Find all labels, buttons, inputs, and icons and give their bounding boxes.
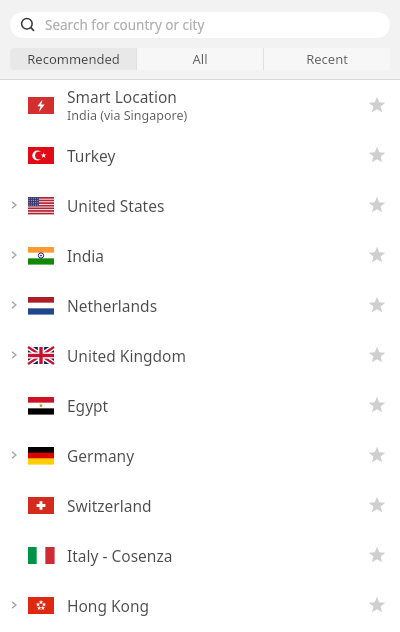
button[interactable]: Favorite Hong Kong [354, 580, 400, 630]
button[interactable]: Favorite Smart Location [354, 80, 400, 130]
staticText: United Kingdom [67, 345, 186, 366]
staticText: Switzerland [67, 495, 152, 516]
button[interactable]: India [0, 230, 400, 280]
staticText: India [67, 245, 105, 266]
staticText: India (via Singapore) [67, 107, 188, 124]
button[interactable]: Favorite India [354, 230, 400, 280]
button[interactable]: Favorite United Kingdom [354, 330, 400, 380]
staticText: Netherlands [67, 295, 158, 316]
button[interactable]: Egypt [0, 380, 400, 430]
button[interactable]: Search for country or city [10, 12, 390, 38]
staticText: Smart Location [67, 86, 177, 107]
button[interactable]: Favorite Netherlands [354, 280, 400, 330]
button[interactable]: All [137, 48, 263, 70]
staticText: Recommended [27, 50, 120, 68]
button[interactable]: Favorite United States [354, 180, 400, 230]
button[interactable]: Hong Kong [0, 580, 400, 630]
button[interactable]: Favorite Germany [354, 430, 400, 480]
staticText: Germany [67, 445, 135, 466]
button[interactable]: United Kingdom [0, 330, 400, 380]
button[interactable]: Favorite Turkey [354, 130, 400, 180]
button[interactable]: Italy - Cosenza [0, 530, 400, 580]
staticText: Hong Kong [67, 595, 150, 616]
staticText: Search for country or city [45, 16, 205, 34]
staticText: Egypt [67, 395, 109, 416]
staticText: Turkey [67, 145, 116, 166]
button[interactable]: Recent [264, 48, 390, 70]
staticText: All [192, 50, 208, 68]
staticText: Recent [306, 50, 348, 68]
button[interactable]: Netherlands [0, 280, 400, 330]
staticText: Italy - Cosenza [67, 545, 173, 566]
button[interactable]: Favorite Italy - Cosenza [354, 530, 400, 580]
staticText: United States [67, 195, 165, 216]
button[interactable]: Germany [0, 430, 400, 480]
button[interactable]: Recommended [10, 48, 136, 70]
button[interactable]: Switzerland [0, 480, 400, 530]
button[interactable]: Favorite Egypt [354, 380, 400, 430]
button[interactable]: United States [0, 180, 400, 230]
button[interactable]: Smart Location [0, 80, 400, 130]
button[interactable]: Favorite Switzerland [354, 480, 400, 530]
button[interactable]: Turkey [0, 130, 400, 180]
